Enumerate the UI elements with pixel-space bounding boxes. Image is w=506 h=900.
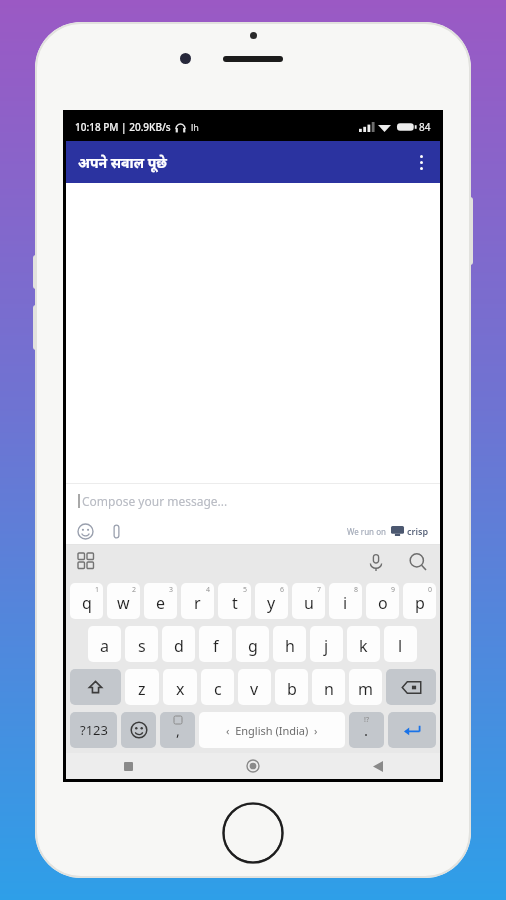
staticText: , <box>176 721 180 740</box>
button[interactable]: Period <box>349 712 384 748</box>
staticText: 1 <box>95 585 100 595</box>
button[interactable]: Backspace <box>386 669 436 705</box>
staticText: 9 <box>391 585 396 595</box>
button[interactable]: p <box>403 583 436 619</box>
staticText: v <box>250 678 259 700</box>
staticText: s <box>138 635 146 657</box>
button[interactable]: s <box>125 626 158 662</box>
staticText: b <box>287 678 297 700</box>
button[interactable]: e <box>144 583 177 619</box>
button[interactable]: Emoji <box>121 712 156 748</box>
button[interactable]: Insert emoji <box>77 523 94 540</box>
staticText: y <box>267 592 276 614</box>
button[interactable]: i <box>329 583 362 619</box>
button[interactable]: d <box>162 626 195 662</box>
button[interactable]: w <box>107 583 140 619</box>
staticText: 2 <box>132 585 137 595</box>
button[interactable]: z <box>125 669 159 705</box>
button[interactable]: a <box>88 626 121 662</box>
button[interactable]: v <box>238 669 271 705</box>
button[interactable]: c <box>201 669 234 705</box>
button[interactable]: Compose your message... <box>66 484 440 518</box>
button[interactable]: Home <box>190 753 315 779</box>
button[interactable]: g <box>236 626 269 662</box>
staticText: ?123 <box>80 721 108 739</box>
button[interactable]: Keyboard options <box>78 553 96 571</box>
button[interactable]: Recent apps <box>66 753 190 779</box>
staticText: 4 <box>206 585 211 595</box>
staticText: t <box>232 592 238 614</box>
staticText: m <box>358 678 373 700</box>
staticText: ‹ English (India) › <box>226 723 318 738</box>
staticText: c <box>214 678 222 700</box>
staticText: !? <box>364 715 369 725</box>
staticText: h <box>285 635 295 657</box>
staticText: o <box>378 592 388 614</box>
staticText: z <box>138 678 146 700</box>
button[interactable]: ‹ English (India) › <box>199 712 345 748</box>
button[interactable]: Symbols <box>70 712 117 748</box>
staticText: 8 <box>354 585 359 595</box>
staticText: l <box>398 635 403 657</box>
staticText: f <box>213 635 219 657</box>
button[interactable]: h <box>273 626 306 662</box>
staticText: a <box>100 635 109 657</box>
staticText: q <box>82 592 92 614</box>
staticText: 10:18 PM | 20.9KB/s <box>75 120 171 134</box>
button[interactable]: t <box>218 583 251 619</box>
button[interactable]: Back <box>315 753 440 779</box>
button[interactable]: Shift <box>70 669 121 705</box>
button[interactable]: y <box>255 583 288 619</box>
button[interactable]: More options <box>402 141 440 183</box>
staticText: . <box>364 720 369 740</box>
button[interactable]: o <box>366 583 399 619</box>
button[interactable]: x <box>163 669 197 705</box>
staticText: 6 <box>280 585 285 595</box>
staticText: g <box>248 635 258 657</box>
button[interactable]: Voice input <box>366 552 386 572</box>
staticText: lh <box>191 121 199 133</box>
staticText: x <box>176 678 185 700</box>
staticText: r <box>194 592 201 614</box>
staticText: 84 <box>419 120 431 134</box>
button[interactable]: f <box>199 626 232 662</box>
staticText: n <box>324 678 334 700</box>
button[interactable]: m <box>349 669 382 705</box>
button[interactable]: u <box>292 583 325 619</box>
staticText: w <box>117 592 130 614</box>
staticText: i <box>343 592 348 614</box>
staticText: p <box>415 592 425 614</box>
staticText: crisp <box>407 525 429 537</box>
button[interactable]: q <box>70 583 103 619</box>
button[interactable]: j <box>310 626 343 662</box>
staticText: e <box>156 592 166 614</box>
staticText: अपने सवाल पूछे <box>78 153 167 172</box>
button[interactable]: Search <box>408 552 428 572</box>
staticText: Compose your message... <box>82 493 228 509</box>
button[interactable]: Attach file <box>108 523 125 540</box>
button[interactable]: l <box>384 626 417 662</box>
staticText: 0 <box>428 585 433 595</box>
staticText: u <box>304 592 314 614</box>
staticText: 5 <box>243 585 248 595</box>
button[interactable]: Enter <box>388 712 436 748</box>
staticText: We run on <box>347 526 386 537</box>
button[interactable]: Comma <box>160 712 195 748</box>
staticText: 3 <box>169 585 174 595</box>
button[interactable]: k <box>347 626 380 662</box>
staticText: 7 <box>317 585 322 595</box>
button[interactable]: r <box>181 583 214 619</box>
button[interactable]: n <box>312 669 345 705</box>
button[interactable]: b <box>275 669 308 705</box>
staticText: j <box>324 635 329 657</box>
staticText: k <box>359 635 368 657</box>
staticText: d <box>174 635 184 657</box>
